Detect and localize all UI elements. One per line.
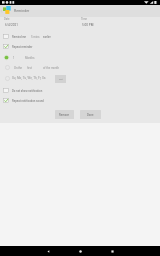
staticText: first <box>27 66 32 69</box>
button[interactable]: Done <box>80 110 101 119</box>
button[interactable]: Back <box>42 246 54 256</box>
staticText: Months <box>25 56 35 59</box>
staticText: 5:00 PM <box>82 23 94 27</box>
staticText: Su, Mo, Tu, We, Th, Fr, Sa <box>12 76 46 80</box>
staticText: Remind me <box>12 35 27 38</box>
button[interactable]: Recent apps <box>106 246 118 256</box>
button[interactable]: Do not show notification <box>0 86 160 94</box>
staticText: Done <box>87 113 94 116</box>
button[interactable]: Home <box>74 246 86 256</box>
staticText: Reminder <box>14 9 30 13</box>
button[interactable]: On the <box>0 62 160 72</box>
button[interactable]: Repeat notification sound <box>0 96 160 104</box>
staticText: Remove <box>59 113 70 116</box>
staticText: Repeat notification sound <box>12 99 44 102</box>
staticText: On the <box>14 66 23 69</box>
button[interactable]: Su, Mo, Tu, We, Th, Fr, Sa <box>0 73 160 83</box>
staticText: Time <box>81 18 87 21</box>
staticText: earlier <box>43 35 51 38</box>
staticText: 6/4/2021 <box>5 23 18 27</box>
staticText: 1 <box>13 56 15 59</box>
button[interactable]: Set <box>55 75 66 83</box>
staticText: 5 mins <box>31 35 40 38</box>
button[interactable]: 1 <box>0 52 160 62</box>
staticText: of the month <box>43 66 59 69</box>
button[interactable]: Remove <box>55 110 74 119</box>
button[interactable]: Repeat reminder <box>0 42 160 50</box>
staticText: Repeat reminder <box>12 45 33 48</box>
staticText: Do not show notification <box>12 89 43 92</box>
button[interactable]: Remind me <box>0 32 160 40</box>
staticText: Set <box>59 78 63 81</box>
staticText: Date <box>4 18 10 21</box>
